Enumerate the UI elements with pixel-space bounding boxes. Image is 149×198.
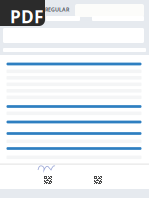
staticText: REGULAR xyxy=(45,6,69,13)
button[interactable]: PDF document xyxy=(0,0,45,26)
staticText: PDF xyxy=(10,5,44,28)
